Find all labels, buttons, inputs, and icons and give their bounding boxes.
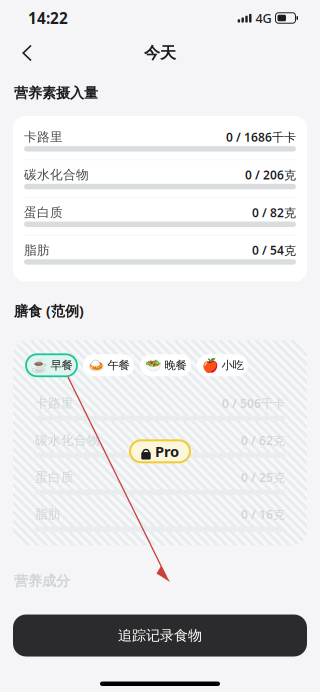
staticText: ☕ <box>30 357 47 373</box>
staticText: 🍛 <box>87 357 104 373</box>
staticText: 营养成分 <box>14 572 70 590</box>
staticText: 追踪记录食物 <box>118 627 202 644</box>
staticText: 卡路里 <box>24 129 63 145</box>
staticText: 今天 <box>144 43 176 63</box>
staticText: 0 / 54克 <box>252 242 296 258</box>
staticText: 0 / 25克 <box>241 469 285 485</box>
button[interactable]: ☕ <box>26 354 77 376</box>
staticText: 14:22 <box>28 8 68 28</box>
staticText: 0 / 62克 <box>241 432 285 448</box>
button[interactable]: 🍎 <box>197 354 248 376</box>
staticText: 碳水化合物 <box>35 432 100 448</box>
staticText: Pro <box>155 441 179 461</box>
staticText: 午餐 <box>107 358 129 372</box>
staticText: 0 / 206克 <box>245 167 296 183</box>
staticText: 4G <box>255 9 271 27</box>
staticText: 蛋白质 <box>24 204 63 220</box>
staticText: 0 / 82克 <box>252 204 296 221</box>
staticText: 卡路里 <box>35 395 74 411</box>
button[interactable]: 追踪记录食物 <box>13 614 307 656</box>
staticText: 0 / 1686千卡 <box>226 129 296 145</box>
staticText: 营养素摄入量 <box>14 84 98 102</box>
staticText: 0 / 16克 <box>241 506 285 522</box>
staticText: 脂肪 <box>24 242 50 258</box>
staticText: 小吃 <box>221 358 243 372</box>
button[interactable]: Pro <box>130 440 190 462</box>
staticText: 🥗 <box>144 357 161 373</box>
staticText: 碳水化合物 <box>24 167 89 183</box>
button[interactable]: 🍛 <box>83 354 134 376</box>
staticText: 0 / 506千卡 <box>222 395 285 411</box>
staticText: 晚餐 <box>164 358 186 372</box>
staticText: 早餐 <box>50 358 72 372</box>
staticText: 🍎 <box>201 357 218 373</box>
staticText: 蛋白质 <box>35 469 74 485</box>
button[interactable]: 🥗 <box>140 354 191 376</box>
staticText: 脂肪 <box>35 506 61 522</box>
button[interactable]: 返回 <box>7 36 47 70</box>
staticText: 膳食 (范例) <box>14 301 84 320</box>
